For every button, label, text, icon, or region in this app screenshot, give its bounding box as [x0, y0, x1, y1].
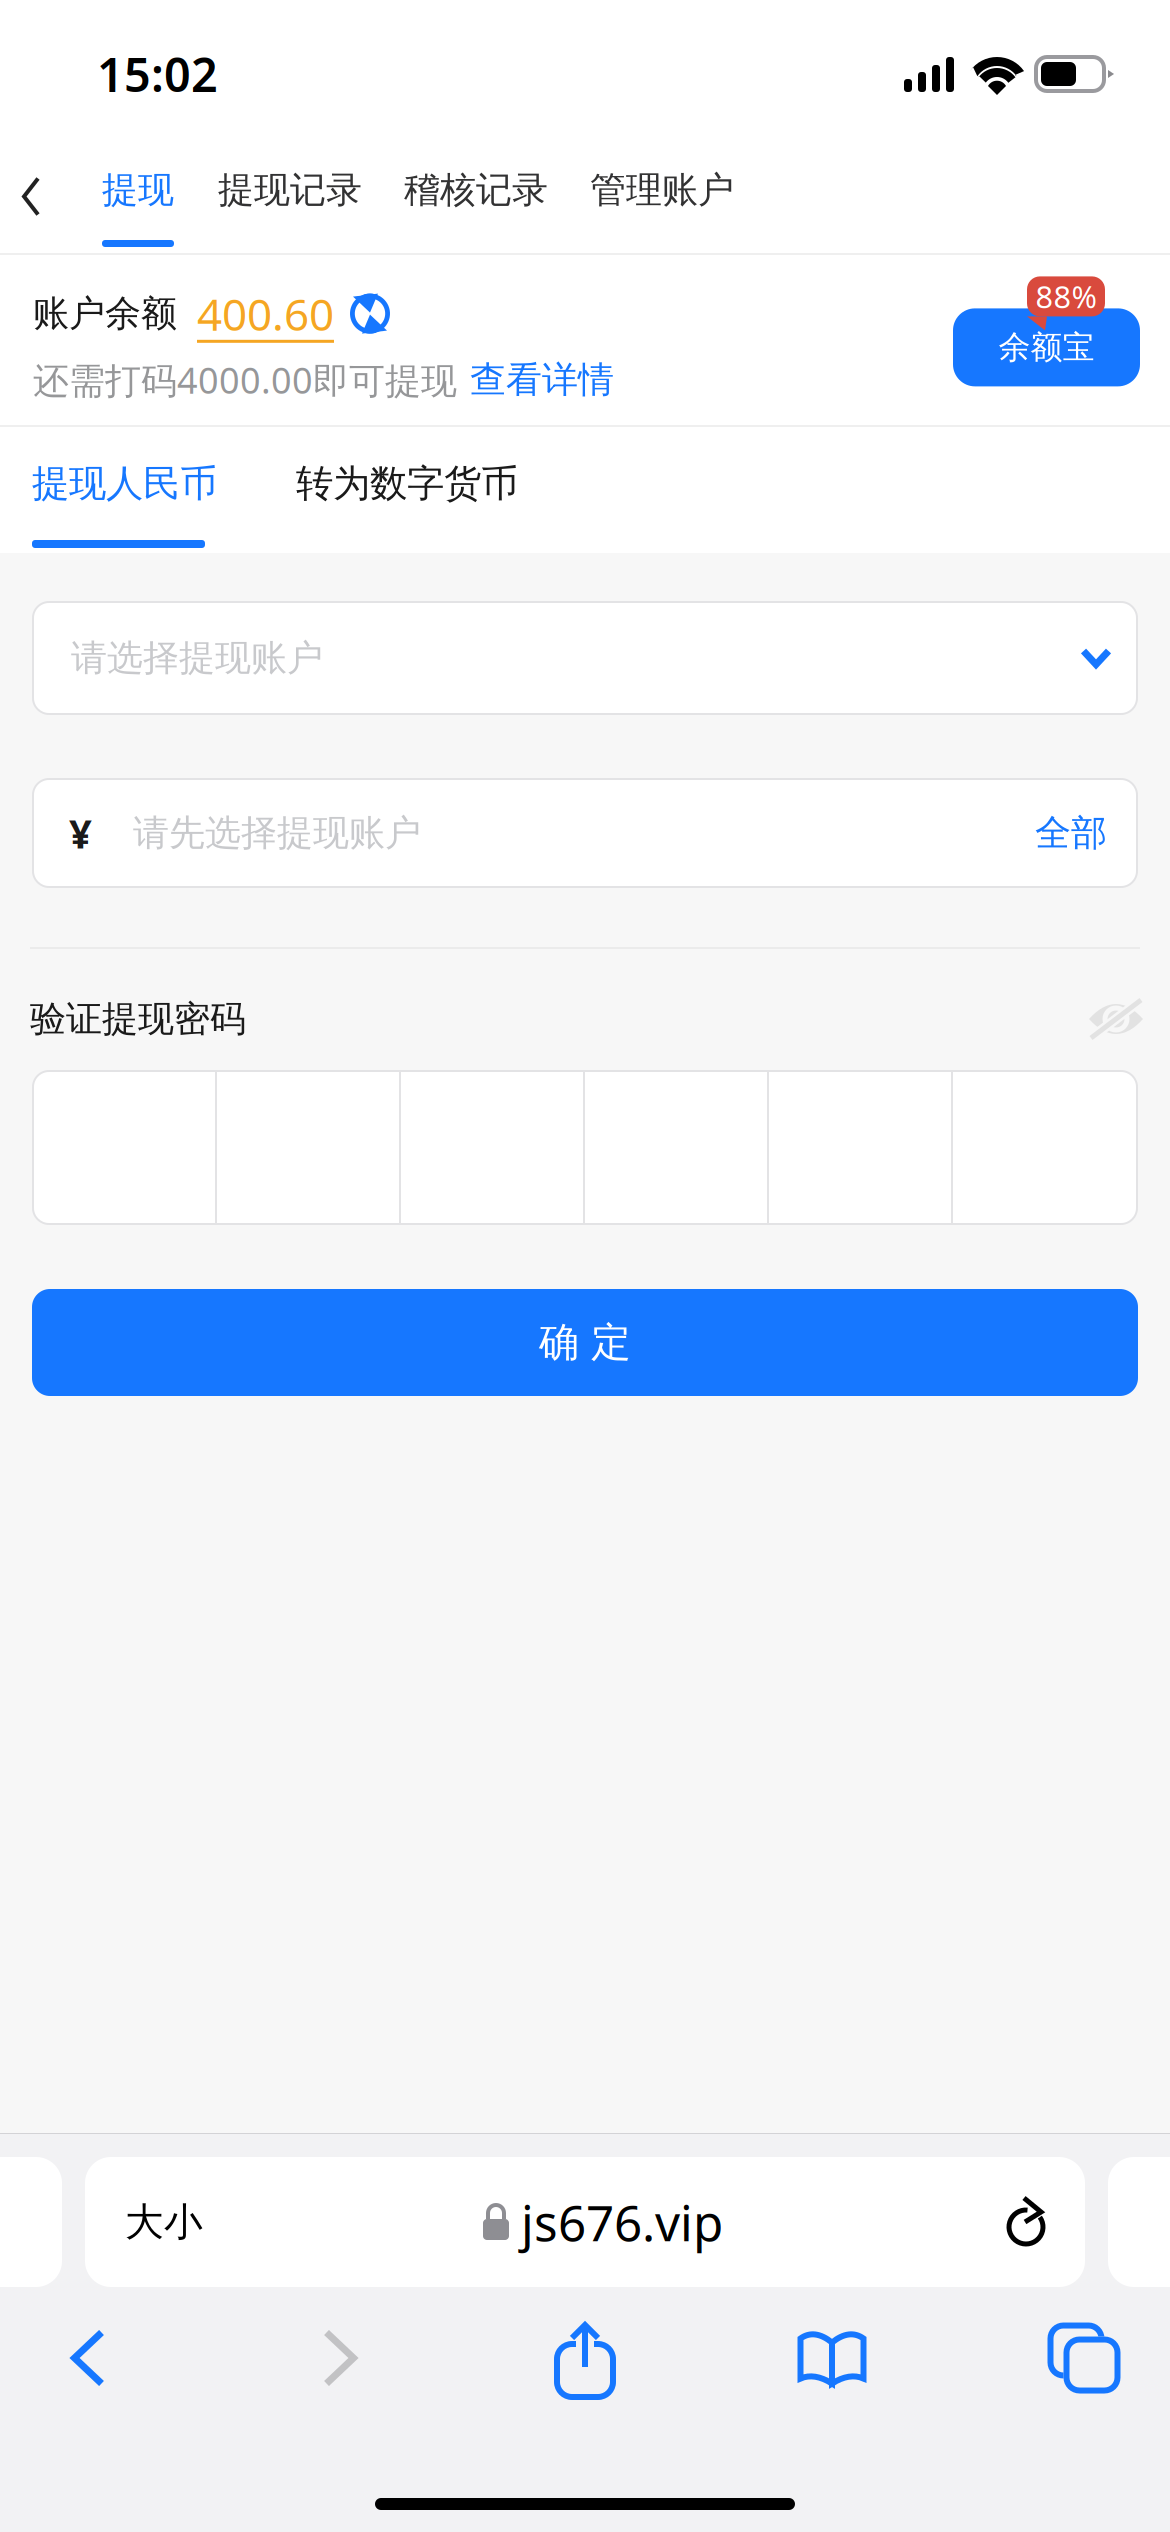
staticText: 15:02	[97, 43, 218, 105]
button[interactable]: Forward	[176, 2303, 504, 2413]
button[interactable]: Tabs	[998, 2303, 1170, 2413]
button[interactable]: 管理账户	[569, 140, 755, 253]
staticText: 提现人民币	[32, 461, 217, 506]
button[interactable]: 大小	[85, 2157, 1085, 2287]
staticText: 88%	[1035, 276, 1096, 317]
button[interactable]: 提现记录	[197, 140, 383, 253]
button[interactable]: Back	[0, 140, 79, 253]
staticText: ¥	[69, 806, 92, 859]
staticText: 账户余额	[33, 291, 177, 336]
staticText: 大小	[125, 2198, 203, 2246]
staticText: 提现记录	[218, 168, 362, 212]
staticText: 稽核记录	[404, 168, 548, 212]
button[interactable]: 稽核记录	[383, 140, 569, 253]
button[interactable]: 请选择提现账户	[0, 553, 1170, 714]
button[interactable]: Share	[504, 2303, 666, 2413]
button[interactable]: 全部	[1035, 811, 1107, 855]
staticText: 提现	[102, 168, 174, 212]
staticText: 余额宝	[998, 328, 1094, 367]
staticText: 请先选择提现账户	[133, 811, 421, 855]
staticText: 确 定	[539, 1318, 631, 1367]
staticText: 管理账户	[590, 168, 734, 212]
staticText: 转为数字货币	[296, 461, 518, 506]
button[interactable]: 确 定	[0, 1224, 1170, 1396]
staticText: js676.vip	[521, 2189, 723, 2255]
button[interactable]: 提现人民币	[0, 427, 296, 553]
staticText: 查看详情	[470, 358, 614, 402]
staticText: 请选择提现账户	[71, 636, 323, 680]
staticText: 全部	[1035, 811, 1107, 855]
staticText: 还需打码4000.00即可提现	[33, 356, 457, 404]
staticText: 验证提现密码	[30, 997, 246, 1041]
button[interactable]: Show password	[1088, 996, 1144, 1042]
button[interactable]: 转为数字货币	[296, 427, 508, 553]
button[interactable]: 余额宝	[953, 276, 1140, 386]
button[interactable]: Back	[0, 2303, 176, 2413]
staticText: 400.60	[197, 284, 334, 343]
button[interactable]: 提现	[79, 140, 197, 253]
button[interactable]: 查看详情	[457, 358, 614, 402]
button[interactable]: Bookmarks	[666, 2303, 998, 2413]
